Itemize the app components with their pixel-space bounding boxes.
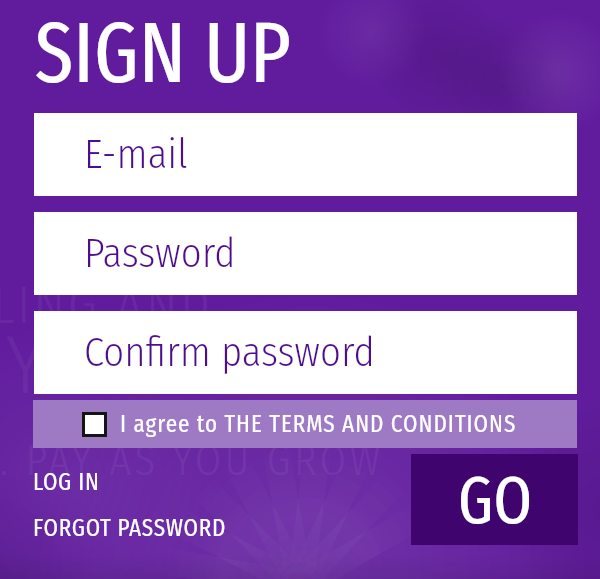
button[interactable]: Accept terms checkbox xyxy=(82,412,107,437)
staticText: Confirm password xyxy=(84,328,375,377)
staticText: GO xyxy=(458,460,532,540)
button[interactable]: FORGOT PASSWORD xyxy=(33,514,227,542)
staticText: FORGOT PASSWORD xyxy=(33,514,227,542)
staticText: I agree to THE TERMS AND CONDITIONS xyxy=(120,410,517,438)
button[interactable]: GO xyxy=(411,454,578,545)
button[interactable]: E-mail xyxy=(34,113,577,196)
button[interactable]: Password xyxy=(34,212,577,295)
staticText: Password xyxy=(84,229,236,278)
staticText: E-mail xyxy=(84,130,188,179)
staticText: Y xyxy=(6,316,45,414)
button[interactable]: Accept terms checkbox xyxy=(33,400,577,448)
staticText: LING AND xyxy=(0,274,214,336)
button[interactable]: LOG IN xyxy=(33,468,100,496)
staticText: SIGN UP xyxy=(35,3,291,105)
staticText: . PAY AS YOU GROW xyxy=(0,436,385,486)
button[interactable]: Confirm password xyxy=(34,311,577,394)
staticText: LOG IN xyxy=(33,468,100,496)
